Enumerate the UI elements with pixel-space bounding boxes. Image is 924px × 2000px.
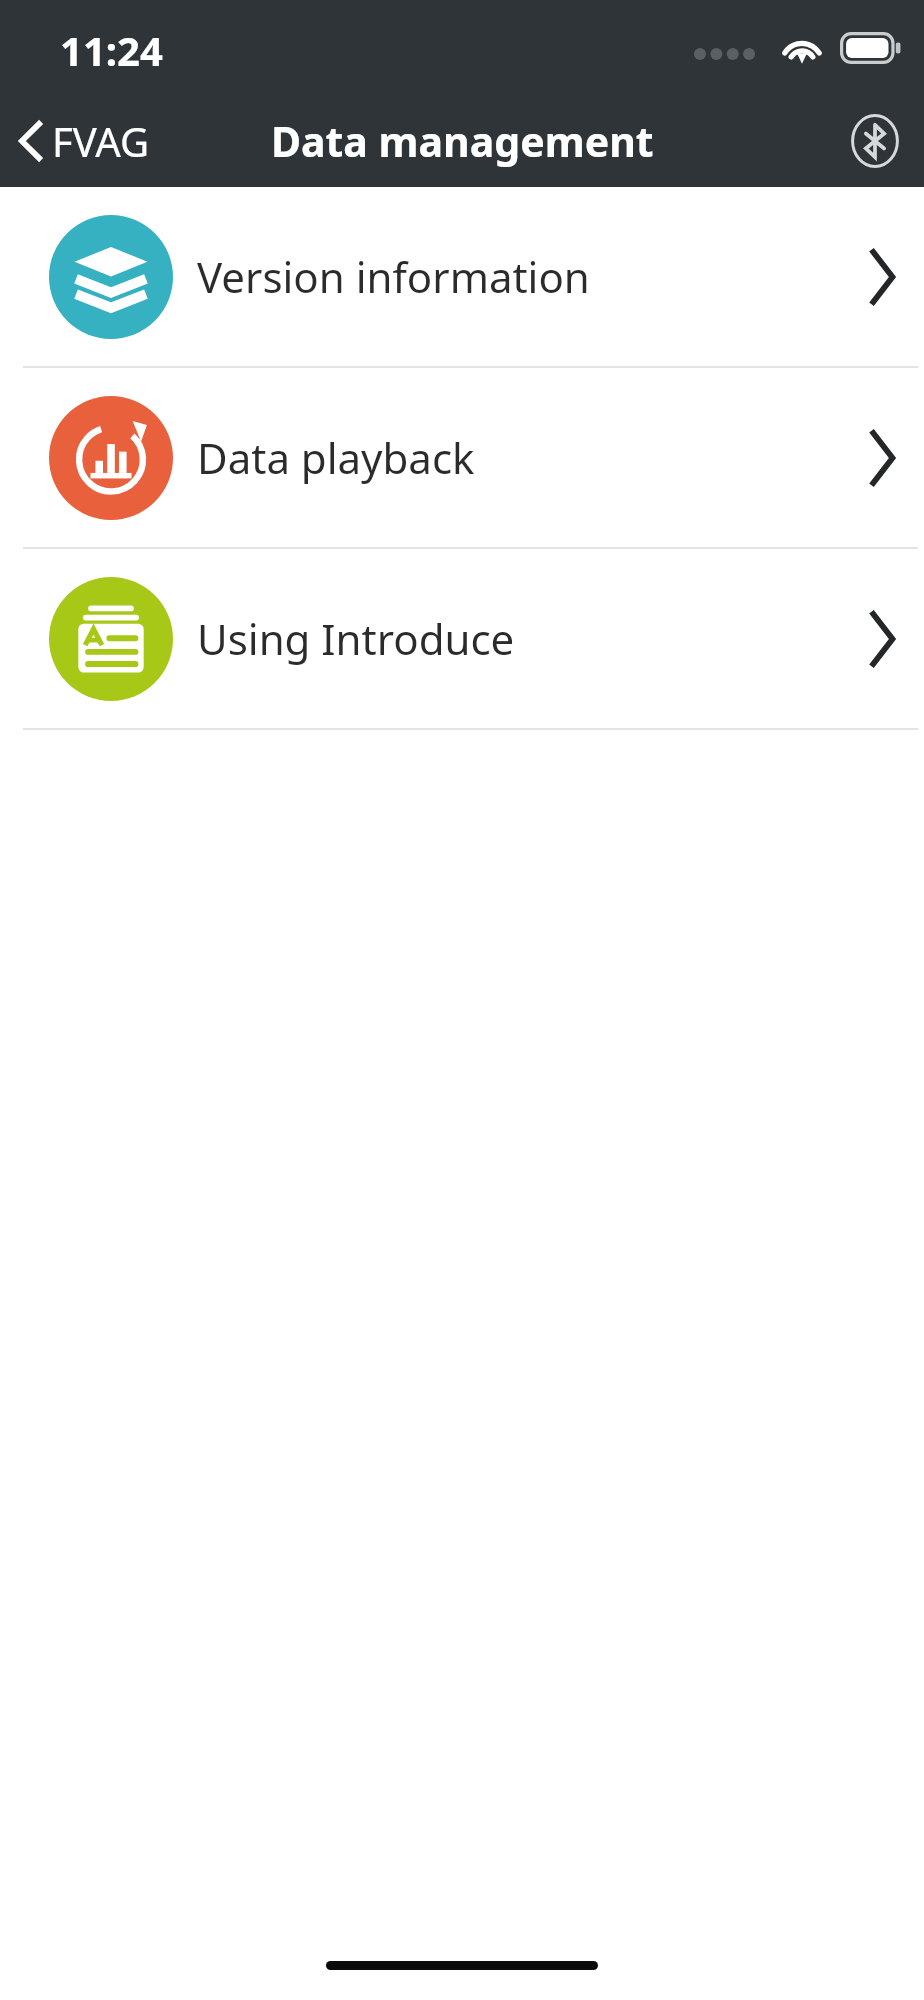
button[interactable]: Version information (0, 187, 924, 366)
button[interactable]: FVAG (0, 104, 164, 178)
button[interactable]: Data playback (0, 368, 924, 547)
staticText: Data management (271, 113, 654, 169)
staticText: FVAG (52, 114, 150, 168)
button[interactable]: Bluetooth (840, 106, 910, 176)
staticText: Using Introduce (197, 610, 866, 667)
staticText: Data playback (197, 429, 866, 486)
staticText: Version information (197, 248, 866, 305)
button[interactable]: Using Introduce (0, 549, 924, 728)
staticText: 11:24 (60, 23, 163, 77)
